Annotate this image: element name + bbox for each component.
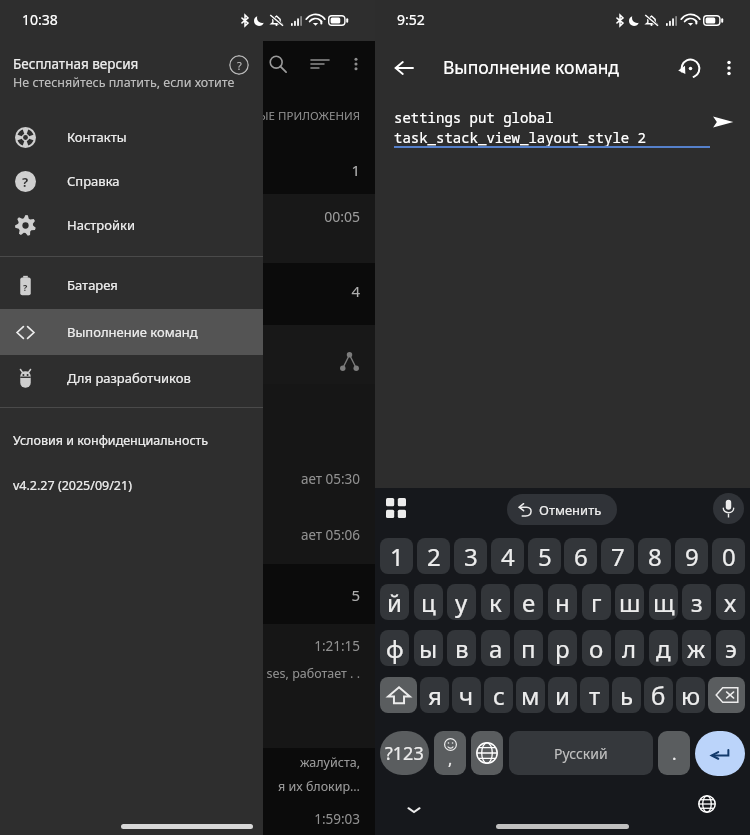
button[interactable]: Бесплатная версия <box>0 41 263 112</box>
button[interactable]: у <box>447 584 476 620</box>
staticText: 5 <box>538 540 552 573</box>
staticText: Контакты <box>67 128 127 146</box>
button[interactable]: Настройки <box>0 203 263 247</box>
button[interactable]: м <box>516 677 545 713</box>
button[interactable]: Контакты <box>0 115 263 159</box>
staticText: ses, работает . . <box>266 665 360 682</box>
button[interactable]: Switch language <box>471 731 503 775</box>
button[interactable]: Back <box>387 51 421 85</box>
button[interactable]: ф <box>380 630 409 666</box>
staticText: о <box>589 632 604 665</box>
button[interactable]: ? <box>0 263 263 307</box>
button[interactable]: Для разработчиков <box>0 356 263 400</box>
button[interactable]: н <box>548 584 577 620</box>
button[interactable]: ? <box>0 159 263 203</box>
button[interactable]: я <box>420 677 449 713</box>
button[interactable]: Sort <box>311 55 329 73</box>
button[interactable]: ч <box>452 677 481 713</box>
button[interactable]: More options <box>349 57 363 71</box>
button[interactable]: 1 <box>380 538 413 574</box>
button[interactable]: е <box>514 584 543 620</box>
button[interactable]: More options <box>713 52 745 84</box>
button[interactable]: а <box>481 630 510 666</box>
button[interactable]: 4 <box>491 538 524 574</box>
button[interactable]: и <box>548 677 577 713</box>
button[interactable]: Shift <box>380 677 417 713</box>
staticText: в <box>455 632 469 665</box>
staticText: 2 <box>427 540 441 573</box>
button[interactable]: о <box>582 630 611 666</box>
button[interactable]: ы <box>414 630 443 666</box>
staticText: ? <box>23 281 28 293</box>
button[interactable]: б <box>644 677 673 713</box>
button[interactable]: Выполнение команд <box>0 309 263 355</box>
button[interactable]: ь <box>612 677 641 713</box>
staticText: 9:52 <box>397 10 425 29</box>
staticText: task_stack_view_layout_style 2 <box>394 128 646 147</box>
button[interactable]: к <box>481 584 510 620</box>
button[interactable]: э <box>716 630 745 666</box>
staticText: п <box>521 632 536 665</box>
button[interactable]: л <box>615 630 644 666</box>
button[interactable]: Voice input <box>713 493 744 524</box>
button[interactable]: ю <box>676 677 705 713</box>
staticText: ? <box>22 173 29 191</box>
staticText: г <box>591 586 602 619</box>
button[interactable]: с <box>484 677 513 713</box>
staticText: Выполнение команд <box>67 323 198 341</box>
staticText: х <box>724 586 737 619</box>
button[interactable]: 5 <box>528 538 561 574</box>
staticText: и <box>555 679 570 712</box>
staticText: с <box>493 679 505 712</box>
staticText: 5 <box>351 585 360 605</box>
staticText: ает 05:06 <box>300 526 360 544</box>
button[interactable]: ш <box>615 584 644 620</box>
button[interactable]: Backspace <box>708 677 745 713</box>
staticText: н <box>555 586 570 619</box>
staticText: э <box>725 632 737 665</box>
button[interactable]: д <box>649 630 678 666</box>
button[interactable]: 7 <box>601 538 634 574</box>
button[interactable]: Hide keyboard <box>401 797 427 823</box>
button[interactable]: , <box>434 731 466 775</box>
button[interactable]: 8 <box>638 538 671 574</box>
button[interactable]: х <box>716 584 745 620</box>
button[interactable]: р <box>548 630 577 666</box>
button[interactable]: 2 <box>417 538 450 574</box>
staticText: ь <box>620 679 634 712</box>
button[interactable]: ?123 <box>380 731 429 775</box>
staticText: й <box>387 586 402 619</box>
staticText: Русский <box>554 744 608 763</box>
button[interactable]: т <box>580 677 609 713</box>
button[interactable]: 9 <box>675 538 708 574</box>
button[interactable]: Отменить <box>507 494 617 525</box>
button[interactable]: з <box>682 584 711 620</box>
staticText: ф <box>386 632 404 665</box>
button[interactable]: Условия и конфиденциальность <box>13 432 209 449</box>
button[interactable]: ц <box>414 584 443 620</box>
staticText: Настройки <box>67 216 136 234</box>
button[interactable]: п <box>514 630 543 666</box>
button[interactable]: 6 <box>564 538 597 574</box>
staticText: ?123 <box>385 741 424 766</box>
button[interactable]: в <box>447 630 476 666</box>
button[interactable]: Clipboard <box>382 494 410 522</box>
button[interactable]: Русский <box>509 731 653 775</box>
button[interactable]: 3 <box>454 538 487 574</box>
button[interactable]: . <box>658 731 690 775</box>
staticText: 4 <box>501 540 515 573</box>
button[interactable]: Language settings <box>696 793 718 815</box>
staticText: Бесплатная версия <box>13 55 139 73</box>
button[interactable]: History <box>674 52 706 84</box>
button[interactable]: Search <box>269 55 287 73</box>
button[interactable]: Enter <box>695 731 745 776</box>
button[interactable]: й <box>380 584 409 620</box>
button[interactable]: Help <box>229 55 249 75</box>
staticText: ш <box>619 586 641 619</box>
button[interactable]: ж <box>682 630 711 666</box>
button[interactable]: г <box>582 584 611 620</box>
button[interactable]: щ <box>649 584 678 620</box>
button[interactable]: Send <box>707 106 739 138</box>
staticText: settings put global <box>394 108 554 127</box>
button[interactable]: 0 <box>712 538 745 574</box>
